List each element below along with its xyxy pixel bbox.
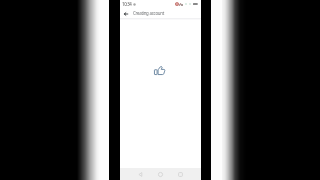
button[interactable]: Recents [177,168,184,180]
button[interactable]: Back [122,10,129,17]
staticText: 10:34 [122,1,132,7]
button[interactable]: Back [137,168,144,180]
button[interactable]: Home [157,168,164,180]
staticText: Creating account [133,10,165,16]
